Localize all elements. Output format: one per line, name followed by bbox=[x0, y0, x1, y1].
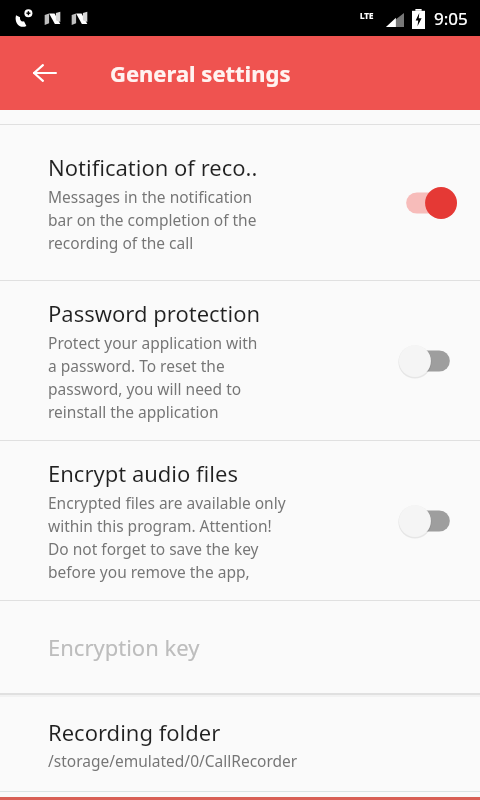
staticText: Protect your application with a password… bbox=[48, 332, 258, 423]
button[interactable]: Encryption key bbox=[0, 601, 480, 693]
staticText: Encryption key bbox=[48, 632, 200, 662]
staticText: 9:05 bbox=[434, 7, 468, 30]
staticText: Password protection bbox=[48, 298, 261, 328]
staticText: LTE bbox=[360, 10, 374, 21]
staticText: Notification of reco.. bbox=[48, 152, 258, 182]
button[interactable]: Recording folder bbox=[0, 697, 480, 791]
staticText: /storage/emulated/0/CallRecorder bbox=[48, 750, 298, 771]
staticText: Messages in the notification bar on the … bbox=[48, 186, 257, 254]
button[interactable]: Password protection bbox=[0, 281, 480, 440]
staticText: General settings bbox=[110, 58, 291, 88]
button[interactable]: Back bbox=[20, 48, 70, 98]
staticText: Recording folder bbox=[48, 717, 221, 747]
button[interactable]: Notification of reco.. bbox=[0, 125, 480, 280]
button[interactable]: Encrypt audio files bbox=[0, 441, 480, 600]
staticText: Encrypted files are available only withi… bbox=[48, 492, 286, 583]
staticText: Encrypt audio files bbox=[48, 458, 238, 488]
